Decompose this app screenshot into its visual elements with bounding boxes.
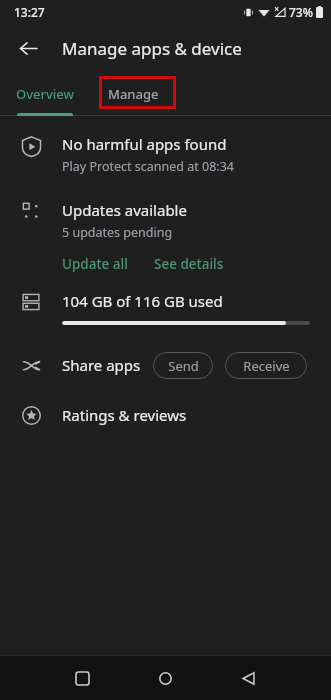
- staticText: Update all: [62, 255, 128, 273]
- button[interactable]: 104 GB of 116 GB used: [0, 291, 331, 325]
- button[interactable]: Manage: [90, 72, 176, 116]
- staticText: See details: [154, 255, 224, 273]
- button[interactable]: Ratings & reviews: [0, 401, 331, 429]
- staticText: Ratings & reviews: [62, 405, 187, 425]
- button[interactable]: Recent apps: [65, 661, 99, 695]
- staticText: Share apps: [62, 355, 141, 375]
- staticText: 104 GB of 116 GB used: [62, 291, 223, 311]
- staticText: Overview: [16, 85, 75, 103]
- button[interactable]: Back: [231, 661, 265, 695]
- button[interactable]: Update all: [62, 255, 128, 273]
- button[interactable]: Updates available: [62, 200, 187, 220]
- staticText: Play Protect scanned at 08:34: [62, 158, 234, 175]
- staticText: 5 updates pending: [62, 224, 173, 241]
- staticText: 13:27: [14, 4, 45, 20]
- staticText: 73%: [289, 4, 313, 20]
- button[interactable]: Receive: [225, 352, 307, 379]
- button[interactable]: See details: [154, 255, 224, 273]
- button[interactable]: Back: [8, 28, 48, 68]
- staticText: Manage: [108, 85, 159, 103]
- button[interactable]: No harmful apps found: [0, 134, 331, 178]
- staticText: Send: [168, 357, 199, 375]
- button[interactable]: Overview: [0, 72, 90, 116]
- button[interactable]: Home: [148, 661, 182, 695]
- staticText: Receive: [243, 357, 290, 375]
- staticText: Manage apps & device: [62, 37, 242, 60]
- staticText: No harmful apps found: [62, 134, 227, 154]
- button[interactable]: Send: [153, 352, 213, 379]
